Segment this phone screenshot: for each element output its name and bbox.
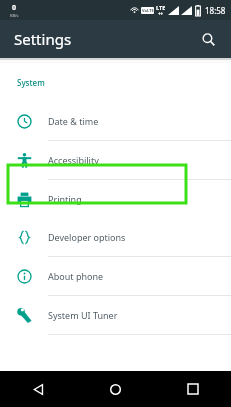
staticText: 18:58 — [205, 5, 226, 16]
staticText: About phone — [48, 270, 104, 282]
staticText: System UI Tuner — [48, 309, 118, 321]
button[interactable]: Accessibility — [0, 141, 231, 179]
staticText: Accessibility — [48, 154, 99, 166]
button[interactable]: Back — [0, 371, 77, 407]
staticText: VoLTE — [142, 8, 154, 13]
staticText: KB/s — [10, 13, 19, 18]
staticText: Date & time — [48, 115, 99, 127]
staticText: System — [17, 77, 45, 88]
button[interactable]: Home — [77, 371, 154, 407]
button[interactable]: Printing — [0, 180, 231, 218]
staticText: Printing — [48, 193, 82, 205]
staticText: Settings — [14, 29, 72, 49]
button[interactable]: System UI Tuner — [0, 296, 231, 334]
staticText: Developer options — [48, 231, 126, 243]
staticText: ++ — [158, 11, 164, 17]
button[interactable]: Recent apps — [154, 371, 231, 407]
button[interactable]: Developer options — [0, 218, 231, 256]
staticText: 0 — [12, 3, 17, 13]
button[interactable]: Date & time — [0, 102, 231, 140]
button[interactable]: About phone — [0, 257, 231, 295]
button[interactable]: Search — [194, 25, 222, 53]
staticText: LTE — [156, 4, 166, 11]
